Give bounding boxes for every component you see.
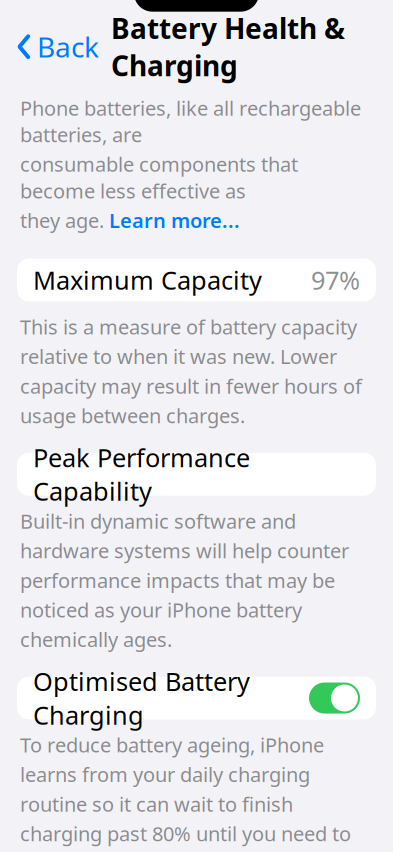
staticText: Battery Health & Charging xyxy=(111,9,345,84)
staticText: they age. xyxy=(20,207,109,233)
button[interactable]: Optimised Battery Charging xyxy=(0,676,393,719)
staticText: To reduce battery ageing, iPhone learns … xyxy=(20,731,351,852)
staticText: Back xyxy=(37,28,99,65)
button[interactable]: Peak Performance Capability xyxy=(0,453,393,496)
staticText: Phone batteries, like all rechargeable b… xyxy=(20,95,361,148)
staticText: Maximum Capacity xyxy=(33,263,262,297)
staticText: Learn more... xyxy=(109,207,240,233)
button[interactable]: Back xyxy=(0,22,99,71)
staticText: This is a measure of battery capacity re… xyxy=(20,313,362,429)
staticText: Peak Performance Capability xyxy=(33,441,250,508)
staticText: consumable components that become less e… xyxy=(20,151,298,204)
staticText: Built-in dynamic software and hardware s… xyxy=(20,508,349,652)
staticText: 97% xyxy=(311,263,360,297)
button[interactable]: Learn more... xyxy=(109,207,240,233)
staticText: Optimised Battery Charging xyxy=(33,664,250,732)
